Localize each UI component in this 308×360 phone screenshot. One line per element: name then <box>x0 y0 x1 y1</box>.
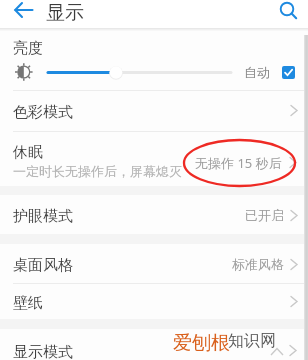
staticText: 知识网 <box>228 331 276 351</box>
button[interactable]: 自动 <box>244 62 295 82</box>
button[interactable]: 显示模式 <box>0 329 308 360</box>
button[interactable]: 桌面风格 <box>0 244 308 283</box>
button[interactable]: Search <box>276 0 300 22</box>
button[interactable]: 色彩模式 <box>0 90 308 131</box>
staticText: 桌面风格 <box>13 256 73 275</box>
staticText: 爱刨根 <box>173 331 230 355</box>
button[interactable]: 壁纸 <box>0 284 308 319</box>
staticText: 壁纸 <box>13 294 43 313</box>
staticText: 已开启 <box>245 207 284 223</box>
staticText: 显示 <box>46 1 84 25</box>
staticText: 显示模式 <box>13 343 73 360</box>
staticText: 色彩模式 <box>13 103 73 122</box>
staticText: 自动 <box>244 64 270 80</box>
staticText: 护眼模式 <box>13 207 73 226</box>
staticText: 无操作 15 秒后 <box>195 154 282 172</box>
button[interactable]: Back <box>11 1 37 23</box>
button[interactable]: 休眠 <box>0 131 308 186</box>
button[interactable]: 护眼模式 <box>0 195 308 234</box>
staticText: 标准风格 <box>232 256 284 272</box>
staticText: 亮度 <box>13 39 43 58</box>
staticText: 休眠 <box>13 143 43 162</box>
staticText: 一定时长无操作后，屏幕熄灭 <box>13 163 182 179</box>
